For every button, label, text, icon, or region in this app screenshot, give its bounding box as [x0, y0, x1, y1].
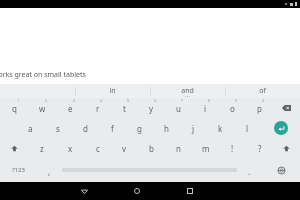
button[interactable]: Backspace [273, 98, 300, 118]
button[interactable]: z [28, 138, 56, 158]
staticText: and [181, 86, 194, 96]
button[interactable]: Shift [0, 138, 28, 158]
staticText: p [257, 103, 262, 114]
staticText: , [48, 166, 51, 177]
button[interactable]: h [153, 118, 180, 138]
button[interactable]: of [225, 84, 300, 98]
staticText: . [248, 166, 251, 177]
button[interactable]: Enter [262, 118, 300, 138]
button[interactable]: Recent apps [176, 182, 204, 200]
staticText: q [12, 103, 17, 114]
staticText: in [109, 86, 116, 96]
staticText: m [202, 143, 210, 154]
button[interactable]: m [192, 138, 219, 158]
button[interactable]: , [37, 158, 62, 182]
staticText: j [192, 123, 195, 134]
button[interactable]: l [234, 118, 261, 138]
staticText: 3 [73, 98, 76, 103]
staticText: t [123, 103, 126, 114]
staticText: n [176, 143, 181, 154]
button[interactable]: y [138, 98, 165, 118]
staticText: l [246, 123, 249, 134]
button[interactable]: Shift [273, 138, 300, 158]
staticText: z [40, 143, 44, 154]
staticText: d [83, 123, 88, 134]
staticText: works great on small tablets [0, 70, 86, 80]
button[interactable]: Back [71, 182, 98, 200]
staticText: 8 [208, 98, 211, 103]
button[interactable]: s [44, 118, 72, 138]
staticText: 6 [154, 98, 157, 103]
staticText: v [122, 143, 127, 154]
staticText: ?123 [12, 166, 25, 174]
staticText: 2 [45, 98, 48, 103]
staticText: 5 [127, 98, 130, 103]
button[interactable]: r [84, 98, 111, 118]
button[interactable]: f [99, 118, 126, 138]
staticText: w [39, 103, 46, 114]
staticText: of [259, 86, 266, 96]
staticText: g [137, 123, 142, 134]
button[interactable]: i [192, 98, 219, 118]
button[interactable]: j [180, 118, 207, 138]
staticText: x [68, 143, 73, 154]
button[interactable]: c [84, 138, 111, 158]
staticText: s [56, 123, 60, 134]
button[interactable]: w [28, 98, 56, 118]
staticText: 7 [181, 98, 184, 103]
staticText: 1 [17, 98, 20, 103]
button[interactable]: t [111, 98, 138, 118]
button[interactable]: q [0, 98, 28, 118]
button[interactable]: d [72, 118, 99, 138]
button[interactable]: Change keyboard language [262, 158, 300, 182]
staticText: r [96, 103, 100, 114]
staticText: 9 [235, 98, 238, 103]
staticText: u [176, 103, 181, 114]
staticText: k [218, 123, 223, 134]
staticText: o [230, 103, 235, 114]
button[interactable]: Space [62, 158, 237, 182]
staticText: 4 [100, 98, 103, 103]
staticText: f [111, 123, 114, 134]
button[interactable]: . [237, 158, 262, 182]
button[interactable]: x [56, 138, 84, 158]
staticText: ! [231, 143, 234, 154]
button[interactable]: a [16, 118, 44, 138]
staticText: c [96, 143, 100, 154]
button[interactable]: e [56, 98, 84, 118]
button[interactable]: in [75, 84, 150, 98]
button[interactable]: o [219, 98, 246, 118]
button[interactable]: ! [219, 138, 246, 158]
button[interactable]: Home [123, 182, 151, 200]
staticText: h [164, 123, 169, 134]
button[interactable]: k [207, 118, 234, 138]
staticText: 0 [262, 98, 265, 103]
staticText: a [28, 123, 33, 134]
button[interactable]: ? [246, 138, 273, 158]
staticText: b [149, 143, 154, 154]
button[interactable]: ?123 [0, 158, 37, 182]
button[interactable]: p [246, 98, 273, 118]
button[interactable]: u [165, 98, 192, 118]
staticText: ? [258, 143, 262, 154]
button[interactable]: n [165, 138, 192, 158]
staticText: y [149, 103, 154, 114]
button[interactable]: and [150, 84, 225, 98]
button[interactable]: g [126, 118, 153, 138]
button[interactable]: v [111, 138, 138, 158]
staticText: e [68, 103, 73, 114]
button[interactable]: b [138, 138, 165, 158]
staticText: i [204, 103, 207, 114]
